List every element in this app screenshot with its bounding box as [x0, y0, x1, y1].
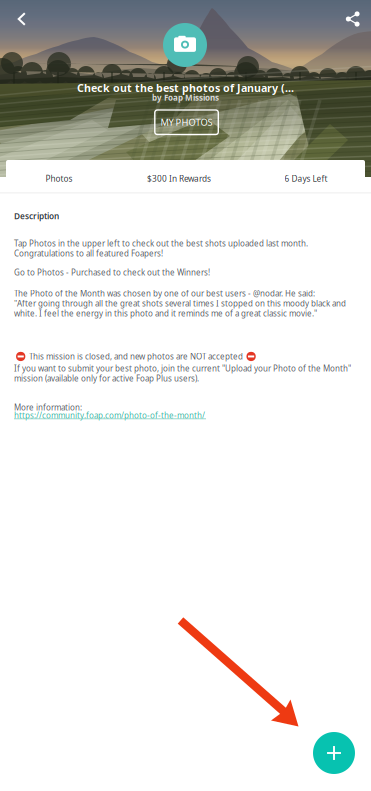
staticText: mission (available only for active Foap … [14, 373, 199, 384]
staticText: white. I feel the energy in this photo a… [14, 308, 317, 319]
button[interactable]: Share [336, 2, 370, 36]
staticText: Tap Photos in the upper left to check ou… [14, 238, 308, 249]
button[interactable]: 6 Days Left [243, 162, 369, 194]
staticText: https://community.foap.com/photo-of-the-… [14, 410, 205, 421]
staticText: The Photo of the Month was chosen by one… [14, 288, 315, 299]
button[interactable]: Photos [6, 162, 112, 194]
button[interactable]: Back [5, 2, 39, 36]
staticText: "After going through all the great shots… [14, 298, 346, 309]
staticText: If you want to submit your best photo, j… [14, 363, 351, 374]
staticText: Photos [45, 173, 72, 184]
staticText: More information: [14, 402, 82, 413]
staticText: 6 Days Left [284, 173, 327, 184]
button[interactable]: $300 In Rewards [119, 162, 239, 194]
button[interactable]: Camera [163, 23, 207, 67]
staticText: $300 In Rewards [147, 173, 211, 184]
staticText: Go to Photos - Purchased to check out th… [14, 267, 210, 278]
button[interactable]: MY PHOTOS [155, 110, 218, 134]
staticText: MY PHOTOS [161, 116, 213, 129]
staticText: Check out the best photos of January (..… [77, 80, 294, 95]
staticText: This mission is closed, and new photos a… [29, 351, 243, 362]
staticText: Description [14, 210, 59, 222]
button[interactable]: Add photo [313, 732, 355, 774]
staticText: Congratulations to all featured Foapers! [14, 248, 163, 259]
staticText: by Foap Missions [152, 92, 219, 103]
